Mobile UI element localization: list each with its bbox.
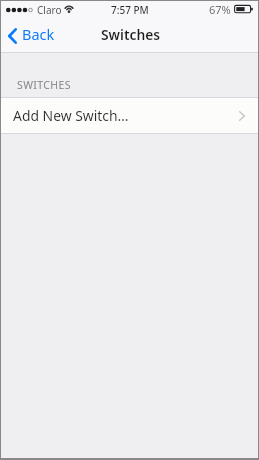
staticText: Claro [37, 3, 62, 17]
staticText: 67% [209, 2, 231, 17]
button[interactable]: Add New Switch… [1, 98, 258, 133]
staticText: Switches [101, 25, 161, 44]
other: Back [8, 28, 17, 44]
staticText: 7:57 PM [111, 3, 149, 17]
staticText: SWITCHES [17, 78, 71, 92]
button[interactable]: Back [1, 26, 63, 46]
staticText: Add New Switch… [13, 106, 129, 125]
staticText: Back [22, 24, 55, 44]
